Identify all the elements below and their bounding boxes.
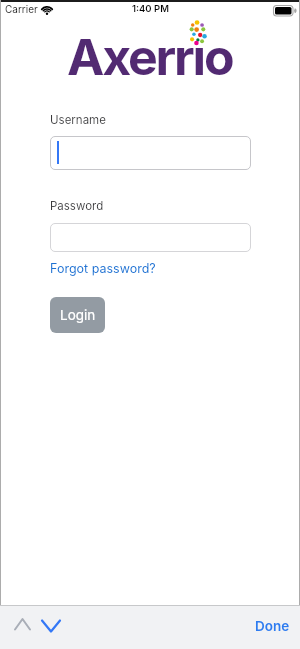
button[interactable]: Done xyxy=(250,612,294,640)
staticText: Login xyxy=(60,307,96,323)
staticText: Carrier xyxy=(5,3,38,15)
button[interactable]: Forgot password? xyxy=(50,261,156,276)
button[interactable] xyxy=(50,223,251,252)
button[interactable] xyxy=(8,614,36,638)
button[interactable] xyxy=(36,614,66,640)
staticText: 1:40 PM xyxy=(132,3,169,14)
button[interactable]: Login xyxy=(50,297,105,333)
staticText: Axerrıo xyxy=(67,27,233,87)
staticText: Password xyxy=(50,199,104,213)
staticText: Done xyxy=(255,618,290,634)
staticText: Forgot password? xyxy=(50,261,156,276)
button[interactable] xyxy=(50,136,251,170)
staticText: Username xyxy=(50,113,106,127)
